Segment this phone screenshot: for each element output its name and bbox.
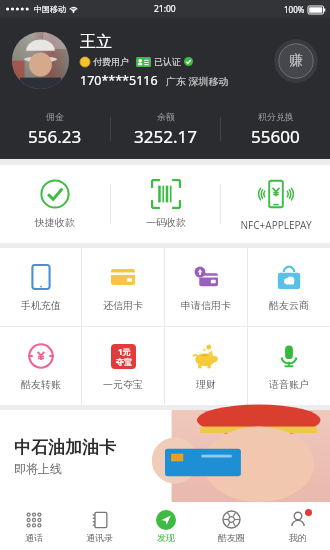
button[interactable]: 佣金 xyxy=(0,103,110,155)
staticText: 理财 xyxy=(196,378,216,391)
staticText: 即将上线 xyxy=(14,461,62,476)
staticText: 中石油加油卡 xyxy=(14,437,116,458)
staticText: 快捷收款 xyxy=(35,216,75,229)
button[interactable]: 中石油加油卡 xyxy=(0,410,330,502)
staticText: 1元 xyxy=(118,346,131,357)
button[interactable]: 余额 xyxy=(111,103,220,155)
staticText: 一码收款 xyxy=(146,216,186,229)
staticText: 手机充值 xyxy=(21,299,61,312)
staticText: 酷友云商 xyxy=(269,299,309,312)
staticText: 通话 xyxy=(25,532,43,543)
button[interactable]: 酷友圈 xyxy=(198,502,264,550)
button[interactable]: 一码收款 xyxy=(111,165,220,243)
button[interactable]: 语音账户 xyxy=(248,327,330,405)
button[interactable]: 还信用卡 xyxy=(82,248,164,326)
staticText: 夺宝 xyxy=(116,357,132,367)
staticText: 酷友圈 xyxy=(218,532,245,543)
staticText: 21:00 xyxy=(154,3,176,15)
staticText: 王立 xyxy=(80,32,112,52)
staticText: 发现 xyxy=(157,532,175,543)
staticText: 佣金 xyxy=(46,111,64,122)
staticText: 赚 xyxy=(289,52,303,70)
button[interactable]: 赚 Earn xyxy=(274,39,318,83)
staticText: 我的 xyxy=(289,532,307,543)
staticText: 酷友转账 xyxy=(21,378,61,391)
staticText: 语音账户 xyxy=(269,378,309,391)
staticText: 一元夺宝 xyxy=(103,378,143,391)
button[interactable]: 手机充值 xyxy=(0,248,81,326)
button[interactable]: 通话 xyxy=(0,502,66,550)
staticText: 积分兑换 xyxy=(258,111,294,122)
staticText: 170****5116 xyxy=(80,72,158,89)
button[interactable]: 发现 xyxy=(132,502,198,550)
staticText: 55600 xyxy=(251,125,300,148)
button[interactable]: 积分兑换 xyxy=(221,103,330,155)
button[interactable]: 酷友转账 xyxy=(0,327,81,405)
staticText: 通讯录 xyxy=(86,532,113,543)
staticText: 3252.17 xyxy=(134,125,197,148)
staticText: 广东 深圳移动 xyxy=(166,74,229,88)
button[interactable]: 1元 xyxy=(82,327,164,405)
staticText: 100% xyxy=(284,4,305,15)
button[interactable]: NFC+APPLEPAY xyxy=(221,165,330,243)
staticText: 付费用户 xyxy=(93,56,129,67)
button[interactable]: 通讯录 xyxy=(66,502,132,550)
staticText: 还信用卡 xyxy=(103,299,143,312)
staticText: 申请信用卡 xyxy=(181,299,231,312)
button[interactable]: 理财 xyxy=(165,327,247,405)
button[interactable]: 快捷收款 xyxy=(0,165,110,243)
staticText: 余额 xyxy=(157,111,175,122)
staticText: 556.23 xyxy=(28,125,82,148)
button[interactable]: 我的 xyxy=(264,502,330,550)
staticText: 已认证 xyxy=(154,56,181,67)
button[interactable]: Profile photo xyxy=(12,32,69,89)
button[interactable]: 酷友云商 xyxy=(248,248,330,326)
button[interactable]: 申请信用卡 xyxy=(165,248,247,326)
staticText: 中国移动 xyxy=(34,4,66,14)
staticText: NFC+APPLEPAY xyxy=(240,218,312,232)
